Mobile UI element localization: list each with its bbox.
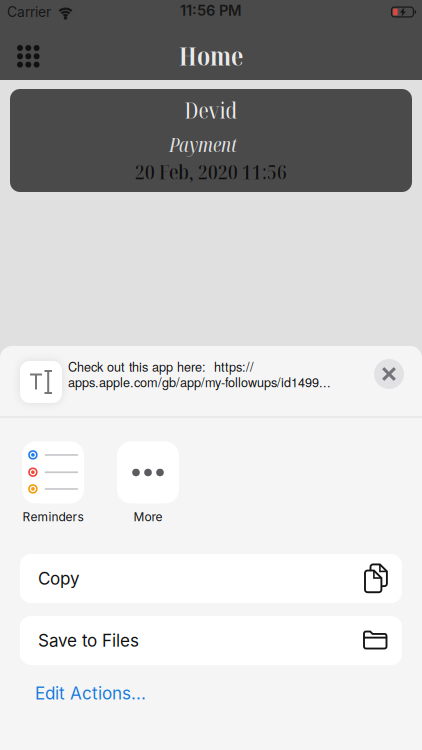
staticText: Check out this app here: https:// bbox=[68, 359, 254, 373]
staticText: Edit Actions... bbox=[35, 683, 146, 704]
staticText: Devid bbox=[184, 95, 237, 125]
staticText: Payment bbox=[169, 131, 237, 158]
staticText: 20 Feb, 2020 11:56 bbox=[135, 158, 287, 185]
staticText: Home bbox=[179, 39, 243, 73]
staticText: 11:56 PM bbox=[180, 2, 242, 19]
staticText: More bbox=[133, 509, 162, 524]
button[interactable]: Save to Files bbox=[20, 616, 402, 665]
staticText: apps.apple.com/gb/app/my-followups/id149… bbox=[68, 374, 331, 389]
button[interactable]: Devid bbox=[10, 89, 412, 192]
button[interactable]: Edit Actions... bbox=[35, 683, 146, 704]
button[interactable]: More bbox=[117, 441, 179, 524]
staticText: Save to Files bbox=[38, 630, 139, 651]
staticText: Carrier bbox=[7, 3, 51, 20]
button[interactable]: Copy bbox=[20, 554, 402, 603]
button[interactable]: Reminders bbox=[22, 441, 84, 524]
staticText: Reminders bbox=[22, 509, 83, 524]
staticText: Copy bbox=[38, 568, 80, 589]
button[interactable]: Close bbox=[374, 359, 404, 389]
button[interactable]: Menu bbox=[17, 45, 40, 68]
